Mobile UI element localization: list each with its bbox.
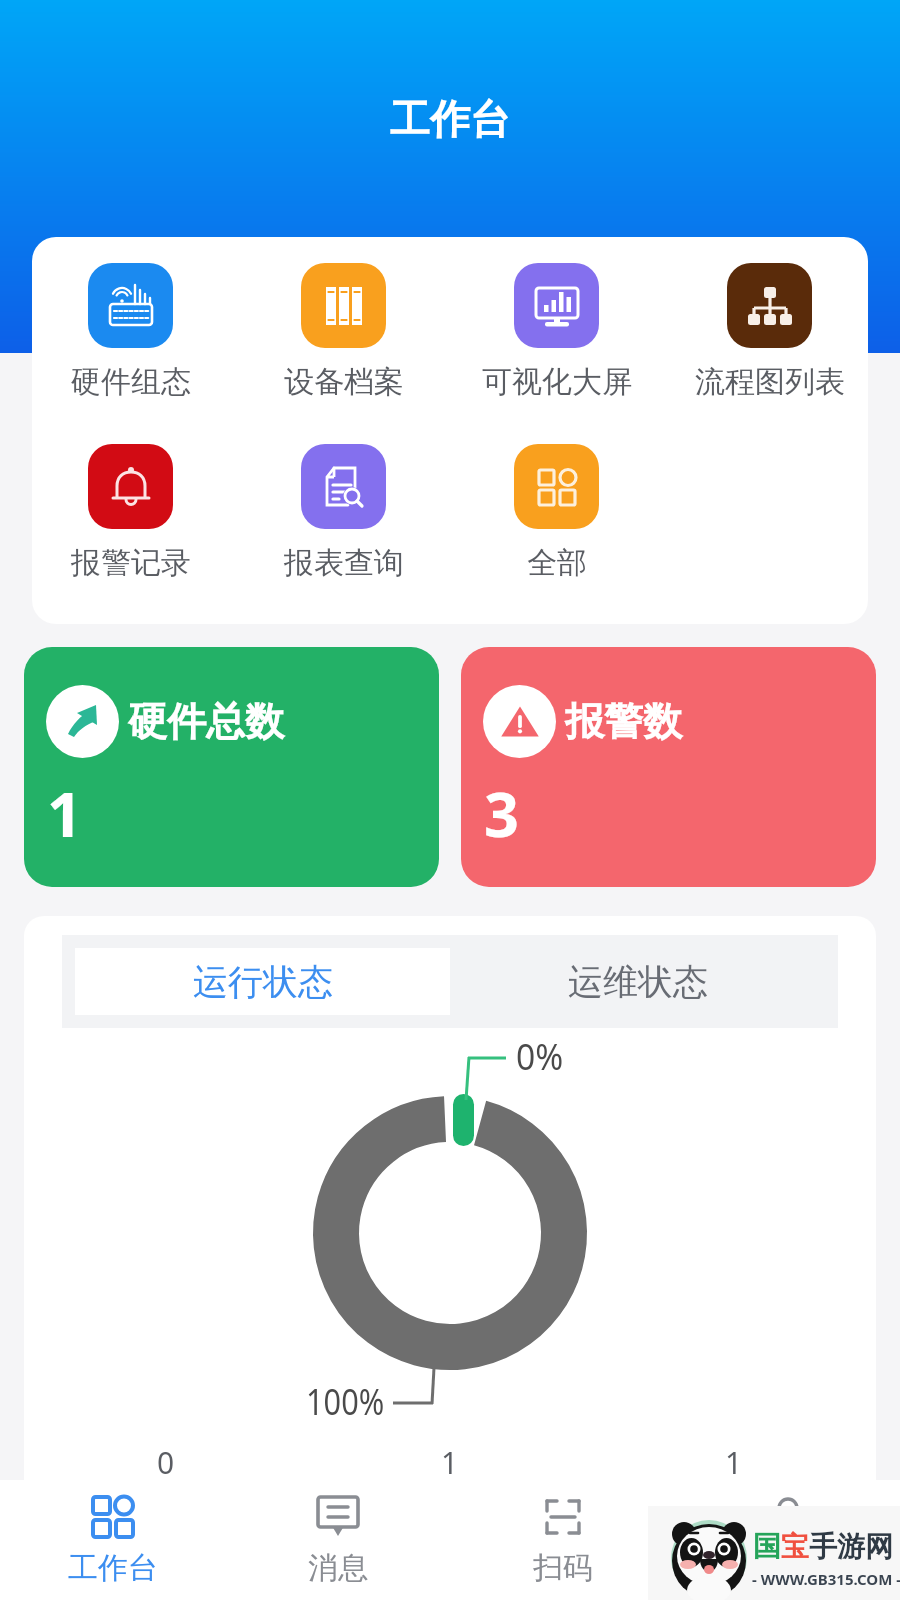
button[interactable]: Profile bbox=[675, 1480, 900, 1600]
button[interactable]: Scan bbox=[450, 1480, 675, 1600]
button[interactable]: 硬件总数 bbox=[24, 647, 439, 887]
button[interactable]: Workbench bbox=[0, 1480, 225, 1600]
button[interactable]: 报表查询 bbox=[237, 444, 450, 582]
staticText: 消息 bbox=[308, 1549, 368, 1587]
other: Messages bbox=[314, 1493, 362, 1541]
staticText: 1 bbox=[725, 1442, 743, 1480]
staticText: 工作台 bbox=[390, 94, 510, 144]
staticText: 1 bbox=[47, 772, 82, 855]
staticText: 100% bbox=[306, 1375, 385, 1425]
button[interactable]: 可视化大屏 bbox=[450, 263, 663, 401]
staticText: 流程图列表 bbox=[695, 363, 845, 401]
staticText: 手游网 bbox=[809, 1529, 893, 1564]
staticText: 全部 bbox=[527, 544, 587, 582]
button[interactable]: 报警记录 bbox=[32, 444, 237, 582]
staticText: 扫码 bbox=[533, 1549, 593, 1587]
staticText: 硬件组态 bbox=[71, 363, 191, 401]
staticText: 硬件总数 bbox=[128, 697, 284, 746]
staticText: 国 bbox=[753, 1529, 781, 1564]
button[interactable]: 全部 bbox=[450, 444, 663, 582]
staticText: 设备档案 bbox=[284, 363, 404, 401]
staticText: 3 bbox=[484, 772, 519, 855]
staticText: 0 bbox=[157, 1442, 175, 1480]
button[interactable]: 硬件组态 bbox=[32, 263, 237, 401]
staticText: 1 bbox=[441, 1442, 459, 1480]
button[interactable]: 运行状态 bbox=[75, 948, 450, 1015]
other: Profile bbox=[764, 1493, 812, 1541]
button[interactable]: 流程图列表 bbox=[663, 263, 868, 401]
staticText: 我的 bbox=[758, 1549, 818, 1587]
staticText: 工作台 bbox=[68, 1549, 158, 1587]
staticText: 宝 bbox=[781, 1529, 809, 1564]
staticText: 报警记录 bbox=[71, 544, 191, 582]
staticText: - WWW.GB315.COM - bbox=[752, 1569, 900, 1589]
staticText: 报警数 bbox=[565, 697, 682, 746]
button[interactable]: Messages bbox=[225, 1480, 450, 1600]
button[interactable]: 运维状态 bbox=[450, 948, 825, 1015]
other: Scan bbox=[539, 1493, 587, 1541]
button[interactable]: 设备档案 bbox=[237, 263, 450, 401]
staticText: 运维状态 bbox=[568, 960, 708, 1004]
button[interactable]: 报警数 bbox=[461, 647, 876, 887]
staticText: 0% bbox=[516, 1030, 563, 1080]
staticText: 可视化大屏 bbox=[482, 363, 632, 401]
staticText: 报表查询 bbox=[284, 544, 404, 582]
staticText: 运行状态 bbox=[193, 960, 333, 1004]
other: Workbench bbox=[89, 1493, 137, 1541]
